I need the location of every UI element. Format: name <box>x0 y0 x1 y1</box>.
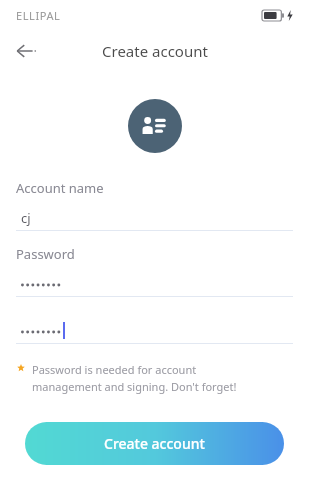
staticText: Create account <box>102 41 208 61</box>
button[interactable]: Back <box>6 31 46 71</box>
staticText: Password <box>16 245 75 263</box>
button[interactable]: Create account <box>25 422 284 465</box>
button[interactable] <box>21 272 293 296</box>
staticText: management and signing. Don't forget! <box>32 379 237 394</box>
staticText: cj <box>21 209 31 227</box>
staticText: ELLIPAL <box>16 8 61 23</box>
staticText: Account name <box>16 179 104 197</box>
staticText: Password is needed for account <box>32 362 197 377</box>
button[interactable]: cj <box>21 206 293 230</box>
button[interactable]: Account avatar <box>128 99 182 153</box>
button[interactable] <box>21 317 293 343</box>
staticText: Create account <box>104 434 205 453</box>
